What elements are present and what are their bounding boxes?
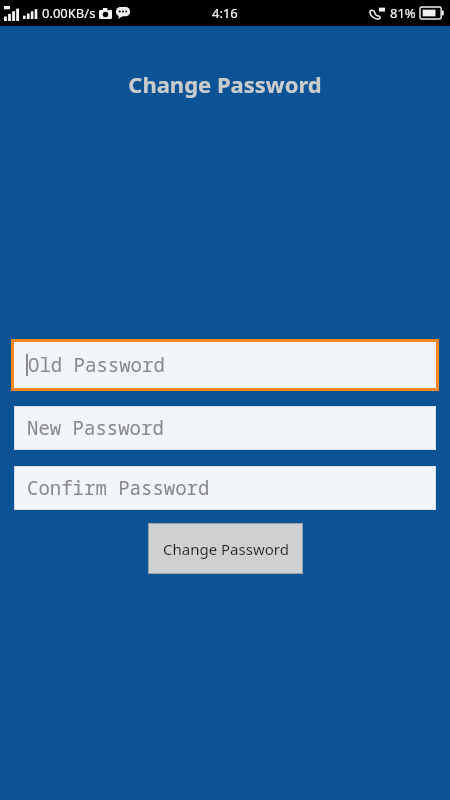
button[interactable]: Confirm Password xyxy=(14,466,436,510)
button[interactable]: Old Password xyxy=(14,342,436,388)
button[interactable]: New Password xyxy=(14,406,436,450)
staticText: Change Password xyxy=(0,69,450,99)
staticText: Old Password xyxy=(28,352,165,378)
staticText: 81% xyxy=(390,4,416,22)
staticText: 0.00KB/s xyxy=(42,4,96,22)
staticText: New Password xyxy=(27,415,164,441)
staticText: 4:16 xyxy=(212,4,238,22)
button[interactable]: Change Password xyxy=(148,523,303,574)
staticText: Change Password xyxy=(163,539,289,559)
staticText: Confirm Password xyxy=(27,475,210,501)
